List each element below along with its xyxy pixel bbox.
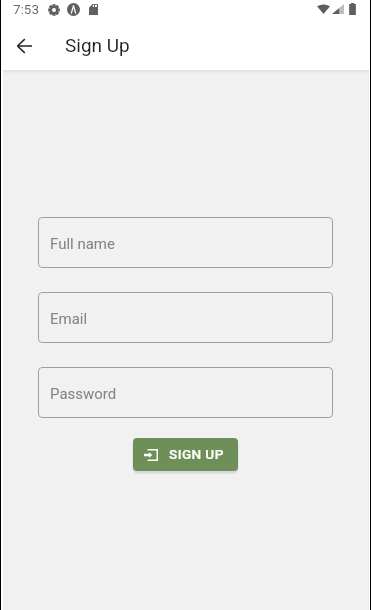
staticText: Full name xyxy=(50,235,115,253)
button[interactable]: SIGN UP xyxy=(133,438,238,471)
button[interactable]: Full name xyxy=(38,217,333,268)
staticText: Sign Up xyxy=(65,34,130,56)
button[interactable]: Password xyxy=(38,367,333,418)
staticText: 7:53 xyxy=(13,1,40,17)
staticText: SIGN UP xyxy=(169,446,224,462)
button[interactable]: Back xyxy=(8,30,40,62)
staticText: Email xyxy=(50,310,88,328)
staticText: Password xyxy=(50,385,117,403)
button[interactable]: Email xyxy=(38,292,333,343)
